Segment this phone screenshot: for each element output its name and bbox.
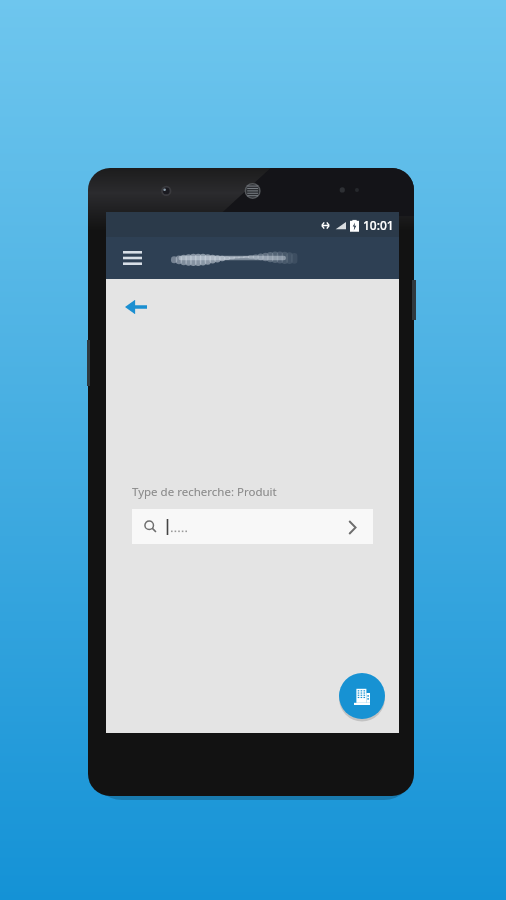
staticText: 10:01 — [363, 217, 394, 233]
staticText: Type de recherche: Produit — [132, 484, 277, 500]
button[interactable]: Back — [118, 289, 154, 325]
button[interactable]: Submit search — [132, 509, 373, 544]
button[interactable]: Submit search — [337, 512, 367, 542]
button[interactable]: Open navigation menu — [116, 242, 148, 274]
button[interactable]: Select company — [339, 673, 385, 719]
